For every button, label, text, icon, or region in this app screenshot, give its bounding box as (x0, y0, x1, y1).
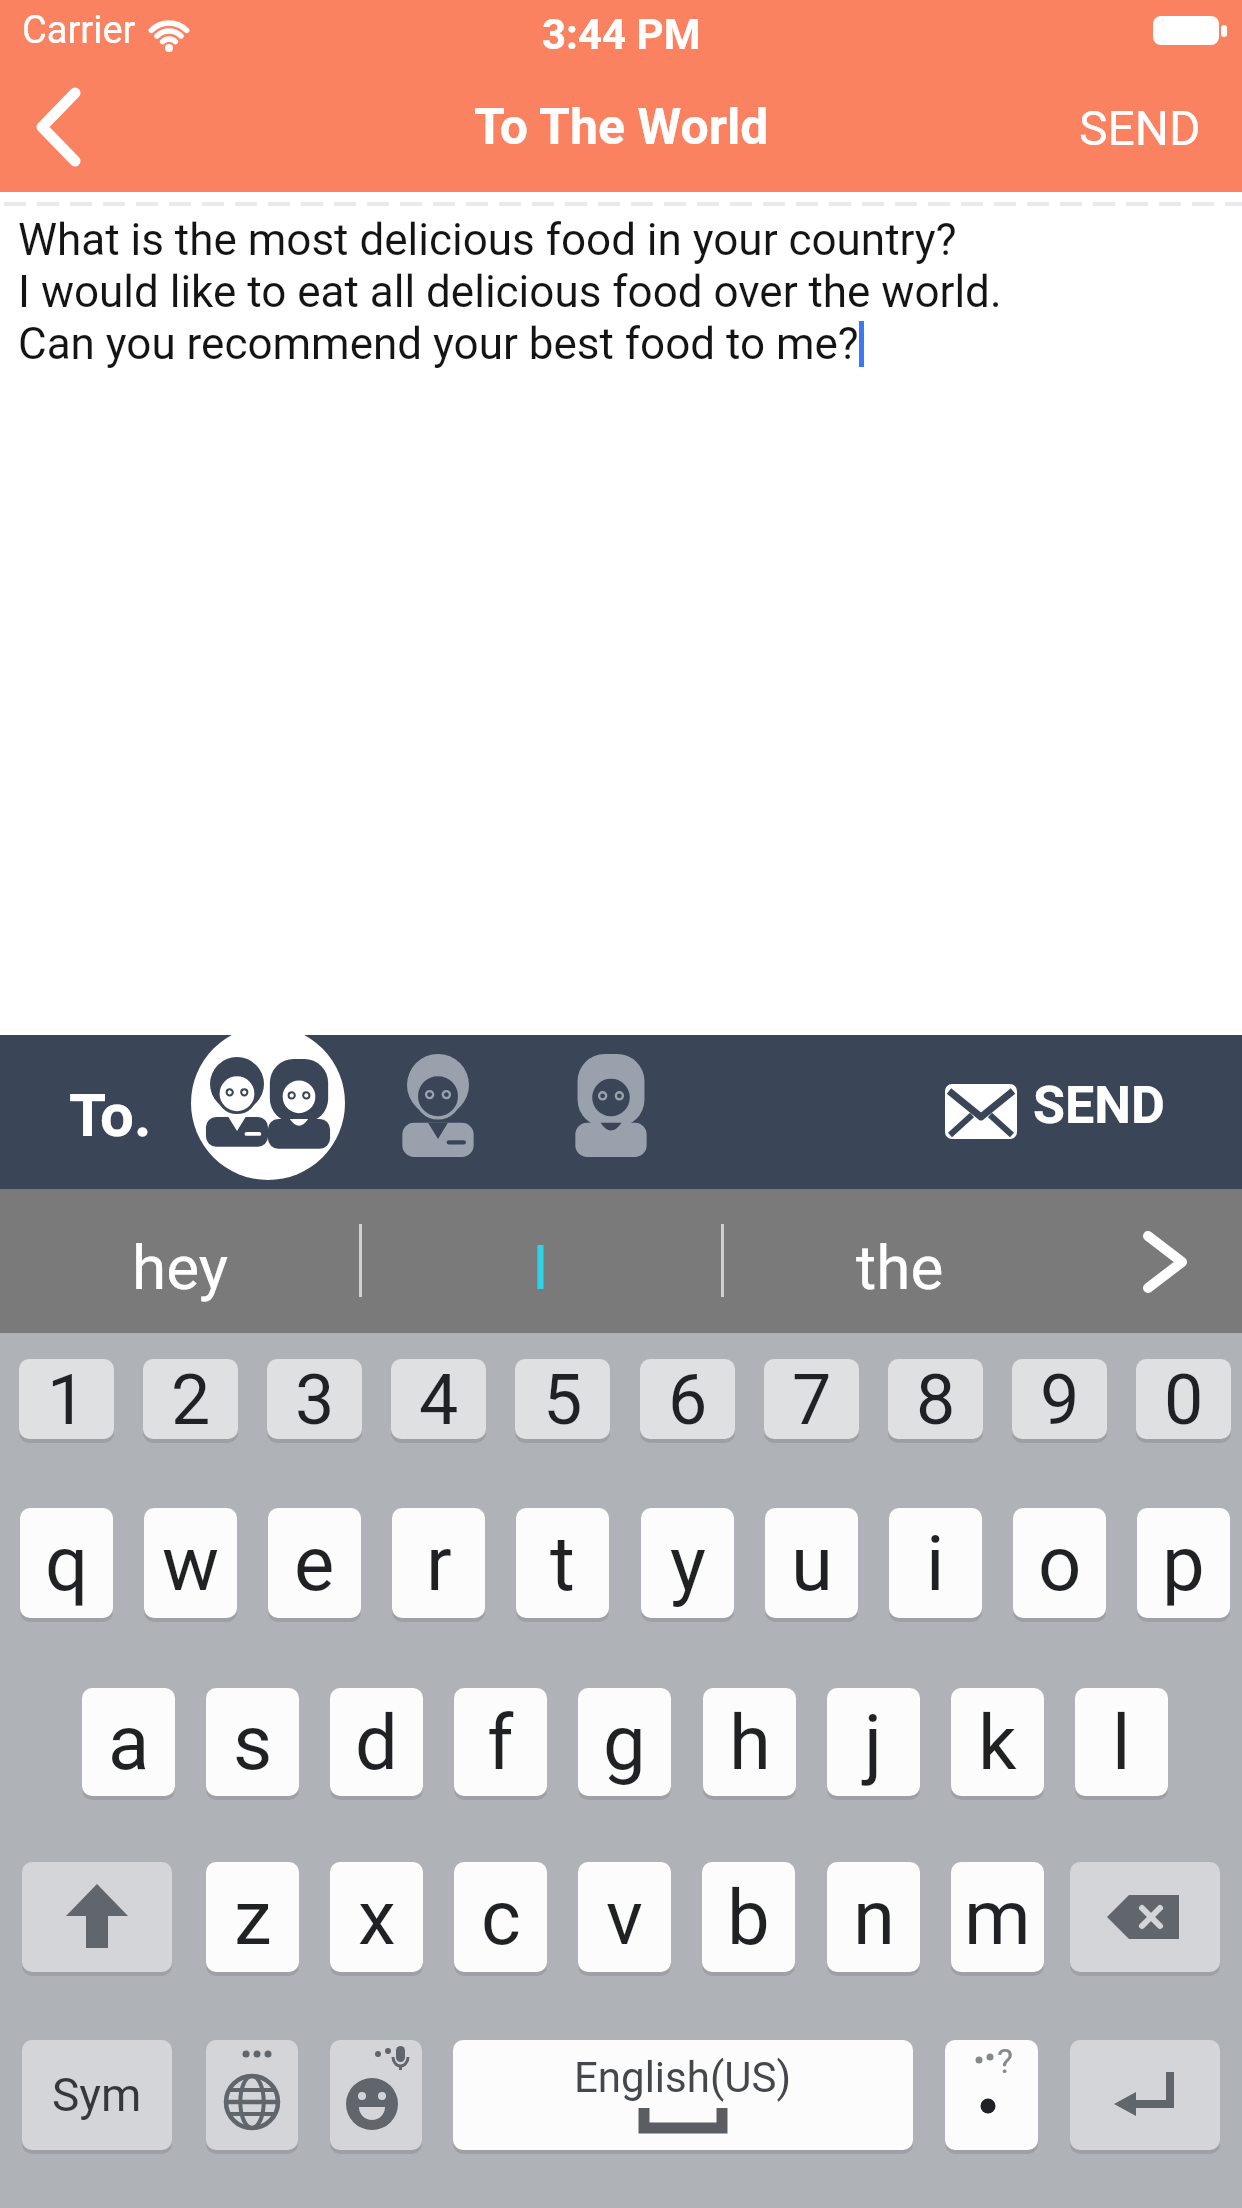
button[interactable]: q (20, 1508, 113, 1618)
staticText: ? (997, 2041, 1014, 2081)
staticText: q (45, 1519, 89, 1608)
staticText: o (1038, 1519, 1082, 1608)
button[interactable]: the (790, 1189, 1010, 1333)
staticText: Sym (52, 2068, 142, 2122)
button[interactable]: x (330, 1862, 423, 1972)
button[interactable]: 8 (888, 1359, 983, 1439)
staticText: 0 (1164, 1359, 1204, 1439)
button[interactable]: 5 (515, 1359, 610, 1439)
button[interactable] (330, 2040, 422, 2150)
button[interactable]: ? (945, 2040, 1038, 2150)
button[interactable]: 3 (267, 1359, 362, 1439)
staticText: Can you recommend your best food to me? (18, 318, 859, 370)
button[interactable]: Sym (22, 2040, 172, 2150)
staticText: 3 (295, 1359, 335, 1439)
staticText: 7 (792, 1359, 832, 1439)
staticText: s (233, 1698, 273, 1787)
button[interactable]: hey (60, 1189, 300, 1333)
button[interactable]: SEND (930, 1060, 1190, 1160)
button[interactable]: e (268, 1508, 361, 1618)
button[interactable] (390, 1045, 486, 1169)
staticText: n (853, 1873, 895, 1962)
button[interactable]: j (827, 1688, 920, 1796)
staticText: u (791, 1519, 833, 1608)
button[interactable]: 1 (19, 1359, 114, 1439)
button[interactable]: c (454, 1862, 547, 1972)
button[interactable]: v (578, 1862, 671, 1972)
button[interactable] (191, 1026, 345, 1180)
button[interactable]: g (578, 1688, 671, 1796)
staticText: a (108, 1698, 150, 1787)
button[interactable]: I (430, 1189, 650, 1333)
button[interactable]: z (206, 1862, 299, 1972)
button[interactable]: 9 (1012, 1359, 1107, 1439)
button[interactable]: y (641, 1508, 734, 1618)
button[interactable] (1110, 1205, 1220, 1317)
staticText: I would like to eat all delicious food o… (18, 266, 1002, 318)
staticText: y (670, 1519, 706, 1608)
button[interactable] (1070, 2040, 1220, 2150)
button[interactable]: i (889, 1508, 982, 1618)
staticText: k (978, 1698, 1017, 1787)
staticText: hey (132, 1231, 228, 1304)
button[interactable]: a (82, 1688, 175, 1796)
staticText: i (926, 1519, 945, 1608)
staticText: To The World (474, 98, 769, 157)
button[interactable]: m (951, 1862, 1044, 1972)
staticText: the (856, 1231, 944, 1304)
staticText: SEND (1033, 1075, 1165, 1136)
button[interactable] (563, 1045, 659, 1169)
button[interactable] (1070, 1862, 1220, 1972)
staticText: v (606, 1873, 643, 1962)
button[interactable]: 6 (640, 1359, 735, 1439)
button[interactable]: l (1075, 1688, 1168, 1796)
button[interactable]: s (206, 1688, 299, 1796)
button[interactable]: 2 (143, 1359, 238, 1439)
staticText: m (964, 1873, 1031, 1962)
button[interactable]: f (454, 1688, 547, 1796)
staticText: f (487, 1698, 514, 1787)
staticText: x (358, 1873, 396, 1962)
button[interactable]: SEND (1060, 96, 1220, 160)
button[interactable] (20, 85, 100, 169)
button[interactable]: b (702, 1862, 795, 1972)
button[interactable]: k (951, 1688, 1044, 1796)
button[interactable]: 0 (1136, 1359, 1231, 1439)
staticText: w (162, 1519, 220, 1608)
staticText: 8 (916, 1359, 956, 1439)
button[interactable] (206, 2040, 298, 2150)
button[interactable]: d (330, 1688, 423, 1796)
button[interactable]: u (765, 1508, 858, 1618)
staticText: What is the most delicious food in your … (18, 214, 957, 266)
button[interactable]: w (144, 1508, 237, 1618)
button[interactable]: o (1013, 1508, 1106, 1618)
staticText: j (864, 1698, 883, 1787)
staticText: e (294, 1519, 335, 1608)
staticText: SEND (1079, 100, 1201, 156)
staticText: I (532, 1231, 549, 1304)
staticText: d (355, 1698, 398, 1787)
button[interactable] (22, 1862, 172, 1972)
staticText: t (550, 1519, 575, 1608)
staticText: c (481, 1873, 521, 1962)
staticText: 5 (543, 1359, 583, 1439)
button[interactable]: r (392, 1508, 485, 1618)
button[interactable]: n (827, 1862, 920, 1972)
button[interactable]: 7 (764, 1359, 859, 1439)
staticText: b (727, 1873, 770, 1962)
button[interactable]: p (1137, 1508, 1230, 1618)
button[interactable]: 4 (391, 1359, 486, 1439)
staticText: h (729, 1698, 771, 1787)
button[interactable]: h (703, 1688, 796, 1796)
staticText: 9 (1040, 1359, 1080, 1439)
staticText: r (426, 1519, 452, 1608)
staticText: 4 (419, 1359, 459, 1439)
staticText: l (1112, 1698, 1131, 1787)
staticText: Carrier (22, 8, 136, 53)
button[interactable]: English(US) (453, 2040, 913, 2150)
button[interactable]: t (516, 1508, 609, 1618)
staticText: 3:44 PM (542, 10, 701, 59)
staticText: 2 (171, 1359, 211, 1439)
staticText: 6 (668, 1359, 708, 1439)
staticText: p (1162, 1519, 1205, 1608)
